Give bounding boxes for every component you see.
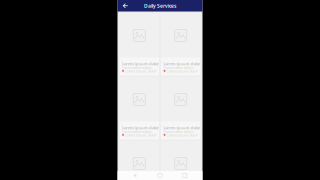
staticText: Lorem ipsum dolor (163, 125, 200, 130)
staticText: Lorem ipsum dolor (122, 125, 159, 130)
button[interactable]: Lorem ipsum dolor (161, 13, 200, 75)
staticText: Lorem ipsum, dolor (166, 69, 197, 73)
staticText: Lorem ipsum, dolor (125, 133, 156, 137)
button[interactable]: Back (117, 0, 133, 11)
staticText: Consectetur adipis (122, 65, 152, 70)
staticText: Lorem ipsum dolor (122, 61, 159, 66)
button[interactable]: Home (153, 171, 167, 180)
button[interactable]: Recent apps (178, 171, 192, 180)
staticText: Lorem ipsum, dolor (166, 133, 197, 137)
button[interactable]: Lorem ipsum dolor (119, 77, 159, 139)
button[interactable]: Lorem ipsum dolor (161, 77, 200, 139)
button[interactable]: Lorem ipsum dolor (119, 13, 159, 75)
button[interactable]: Lorem ipsum dolor (161, 141, 200, 180)
button[interactable]: Back (128, 171, 142, 180)
staticText: Consectetur adipis (122, 129, 152, 134)
button[interactable]: Lorem ipsum dolor (119, 141, 159, 180)
staticText: Lorem ipsum, dolor (125, 69, 156, 73)
staticText: Lorem ipsum dolor (163, 61, 200, 66)
staticText: Daily Services (144, 2, 176, 9)
staticText: Consectetur adipis (163, 65, 193, 70)
staticText: Consectetur adipis (163, 129, 193, 134)
